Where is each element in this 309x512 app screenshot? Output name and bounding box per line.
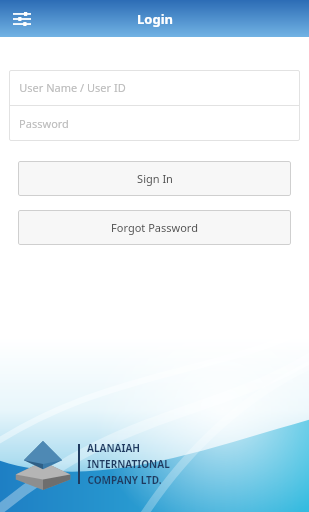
staticText: Password	[19, 116, 69, 131]
staticText: ALANAIAH	[87, 441, 140, 455]
staticText: INTERNATIONAL	[87, 457, 170, 471]
staticText: Forgot Password	[111, 220, 198, 235]
button[interactable]: Forgot Password	[18, 210, 291, 245]
button[interactable]: User Name / User ID	[9, 70, 300, 105]
button[interactable]: Settings	[6, 3, 38, 35]
staticText: COMPANY LTD.	[87, 473, 162, 487]
button[interactable]: Sign In	[18, 161, 291, 196]
button[interactable]: Password	[9, 106, 300, 141]
staticText: Sign In	[137, 171, 173, 186]
staticText: Login	[137, 10, 173, 28]
staticText: User Name / User ID	[19, 80, 126, 95]
